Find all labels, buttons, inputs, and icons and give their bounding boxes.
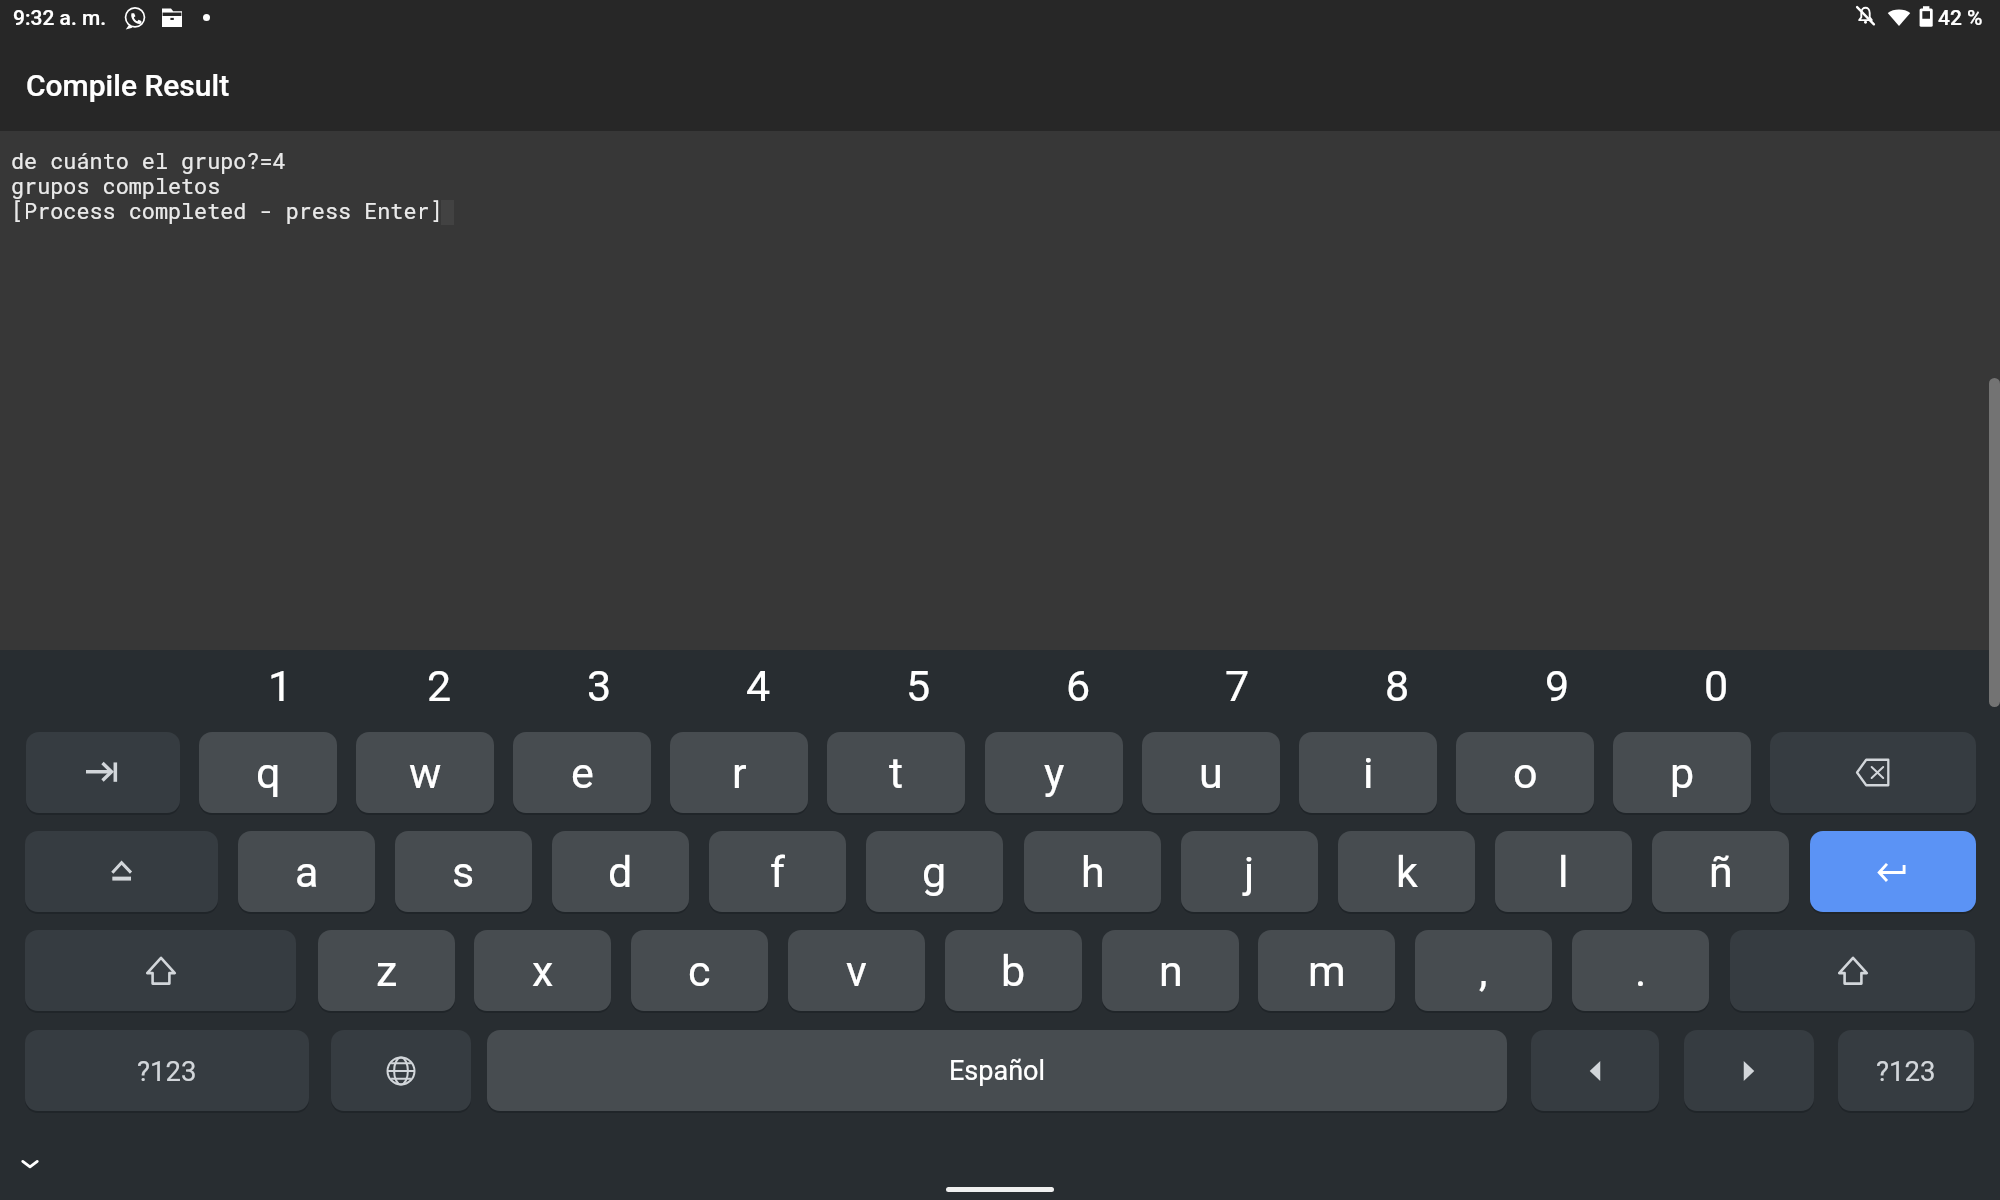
button[interactable]: Hide keyboard bbox=[6, 1140, 54, 1188]
button[interactable]: f bbox=[709, 831, 846, 912]
button[interactable]: Move cursor right bbox=[1684, 1030, 1814, 1111]
staticText: l bbox=[1558, 847, 1569, 897]
button[interactable]: 3 bbox=[537, 652, 661, 720]
staticText: m bbox=[1308, 946, 1346, 996]
staticText: 0 bbox=[1704, 661, 1729, 711]
button[interactable]: Tab bbox=[26, 732, 180, 813]
staticText: ñ bbox=[1709, 847, 1733, 897]
staticText: de cuánto el grupo?=4 grupos completos [… bbox=[11, 146, 443, 225]
staticText: u bbox=[1199, 748, 1223, 798]
button[interactable]: Caps lock bbox=[25, 831, 218, 912]
staticText: k bbox=[1396, 847, 1418, 897]
button[interactable]: 9 bbox=[1495, 652, 1619, 720]
button[interactable]: Enter bbox=[1810, 831, 1976, 912]
button[interactable]: g bbox=[866, 831, 1003, 912]
staticText: ?123 bbox=[137, 1055, 197, 1087]
button[interactable]: ?123 bbox=[1838, 1030, 1974, 1111]
button[interactable]: t bbox=[827, 732, 965, 813]
button[interactable]: 5 bbox=[856, 652, 980, 720]
button[interactable]: h bbox=[1024, 831, 1161, 912]
button[interactable]: z bbox=[318, 930, 455, 1011]
other: Move cursor left bbox=[1584, 1060, 1606, 1082]
button[interactable]: m bbox=[1258, 930, 1395, 1011]
button[interactable]: Backspace bbox=[1770, 732, 1976, 813]
staticText: j bbox=[1244, 847, 1255, 897]
other: Tab bbox=[86, 762, 120, 784]
button[interactable]: Shift bbox=[25, 930, 296, 1011]
staticText: 8 bbox=[1385, 661, 1410, 711]
staticText: x bbox=[532, 946, 554, 996]
other: Caps lock bbox=[111, 861, 133, 883]
button[interactable]: d bbox=[552, 831, 689, 912]
staticText: 7 bbox=[1225, 661, 1250, 711]
staticText: 9:32 a. m. bbox=[13, 6, 107, 31]
button[interactable]: y bbox=[985, 732, 1123, 813]
staticText: 5 bbox=[906, 661, 931, 711]
staticText: q bbox=[256, 748, 281, 798]
button[interactable]: 6 bbox=[1016, 652, 1140, 720]
staticText: , bbox=[1479, 946, 1488, 996]
button[interactable]: 0 bbox=[1654, 652, 1778, 720]
button[interactable]: u bbox=[1142, 732, 1280, 813]
staticText: e bbox=[571, 748, 594, 798]
button[interactable]: v bbox=[788, 930, 925, 1011]
button[interactable]: j bbox=[1181, 831, 1318, 912]
staticText: z bbox=[376, 946, 398, 996]
button[interactable]: c bbox=[631, 930, 768, 1011]
button[interactable]: , bbox=[1415, 930, 1552, 1011]
staticText: a bbox=[295, 847, 319, 897]
other: Enter bbox=[1878, 861, 1908, 883]
staticText: g bbox=[922, 847, 947, 897]
staticText: n bbox=[1159, 946, 1183, 996]
button[interactable]: Change language bbox=[331, 1030, 471, 1111]
staticText: 2 bbox=[427, 661, 452, 711]
button[interactable]: . bbox=[1572, 930, 1709, 1011]
button[interactable]: k bbox=[1338, 831, 1475, 912]
button[interactable]: q bbox=[199, 732, 337, 813]
staticText: v bbox=[846, 946, 867, 996]
staticText: 42 % bbox=[1938, 6, 1983, 31]
staticText: 4 bbox=[746, 661, 771, 711]
staticText: 9 bbox=[1545, 661, 1570, 711]
button[interactable]: o bbox=[1456, 732, 1594, 813]
button[interactable]: 1 bbox=[218, 652, 342, 720]
staticText: f bbox=[770, 847, 785, 897]
staticText: . bbox=[1635, 946, 1647, 996]
button[interactable]: w bbox=[356, 732, 494, 813]
button[interactable]: s bbox=[395, 831, 532, 912]
staticText: r bbox=[732, 748, 747, 798]
button[interactable]: 4 bbox=[696, 652, 820, 720]
staticText: h bbox=[1081, 847, 1105, 897]
staticText: y bbox=[1044, 748, 1065, 798]
staticText: Español bbox=[949, 1055, 1046, 1087]
button[interactable]: b bbox=[945, 930, 1082, 1011]
staticText: 3 bbox=[587, 661, 612, 711]
button[interactable]: ñ bbox=[1652, 831, 1789, 912]
button[interactable]: l bbox=[1495, 831, 1632, 912]
button[interactable]: 8 bbox=[1335, 652, 1459, 720]
button[interactable]: Shift bbox=[1730, 930, 1975, 1011]
staticText: Compile Result bbox=[26, 68, 230, 103]
button[interactable]: 7 bbox=[1175, 652, 1299, 720]
button[interactable]: x bbox=[474, 930, 611, 1011]
staticText: i bbox=[1363, 748, 1374, 798]
button[interactable]: r bbox=[670, 732, 808, 813]
other: Backspace bbox=[1856, 758, 1890, 787]
staticText: c bbox=[688, 946, 711, 996]
button[interactable]: n bbox=[1102, 930, 1239, 1011]
button[interactable]: 2 bbox=[377, 652, 501, 720]
other: Shift bbox=[146, 956, 176, 986]
button[interactable]: ?123 bbox=[25, 1030, 309, 1111]
button[interactable]: p bbox=[1613, 732, 1751, 813]
button[interactable]: Move cursor left bbox=[1531, 1030, 1659, 1111]
button[interactable]: a bbox=[238, 831, 375, 912]
staticText: d bbox=[608, 847, 633, 897]
staticText: b bbox=[1001, 946, 1026, 996]
staticText: p bbox=[1670, 748, 1695, 798]
button[interactable]: i bbox=[1299, 732, 1437, 813]
other: Change language bbox=[386, 1056, 416, 1086]
button[interactable]: e bbox=[513, 732, 651, 813]
button[interactable]: Español bbox=[487, 1030, 1507, 1111]
staticText: s bbox=[452, 847, 475, 897]
staticText: t bbox=[889, 748, 904, 798]
